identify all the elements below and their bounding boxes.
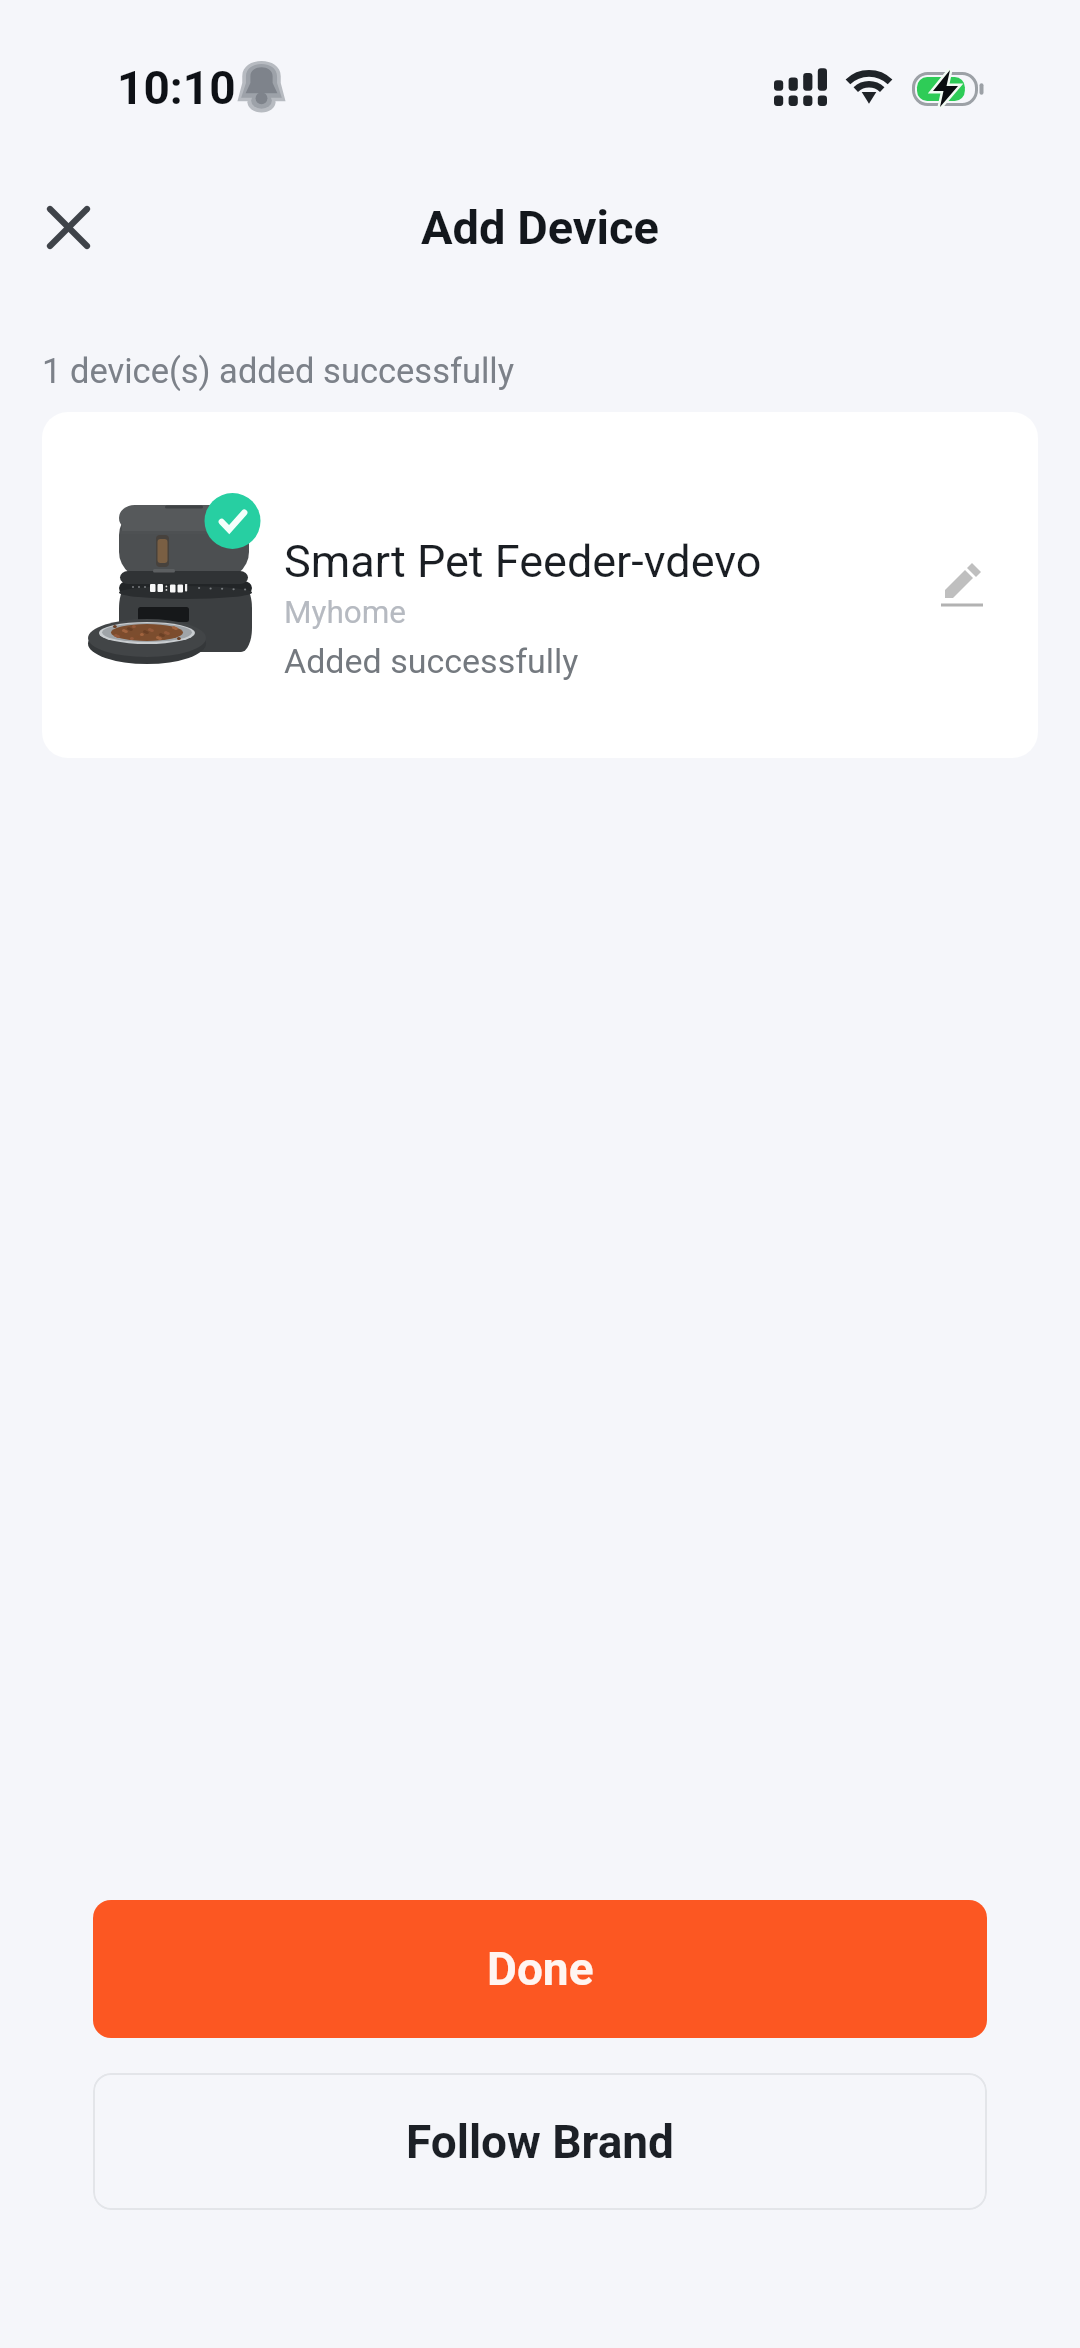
staticText: 10:10 — [117, 61, 236, 115]
staticText: Done — [487, 1942, 594, 1996]
staticText: Follow Brand — [406, 2115, 675, 2169]
staticText: 1 device(s) added successfully — [42, 351, 515, 391]
staticText: Add Device — [421, 200, 659, 255]
staticText: Added successfully — [284, 641, 579, 681]
button[interactable]: Follow Brand — [93, 2073, 987, 2210]
staticText: Myhome — [284, 594, 407, 631]
button[interactable]: Done — [93, 1900, 987, 2038]
staticText: Smart Pet Feeder-vdevo — [284, 535, 762, 588]
button[interactable]: Rename device — [907, 532, 1017, 642]
button[interactable]: Close — [12, 171, 124, 283]
button[interactable]: Smart Pet Feeder-vdevo — [42, 412, 1038, 758]
